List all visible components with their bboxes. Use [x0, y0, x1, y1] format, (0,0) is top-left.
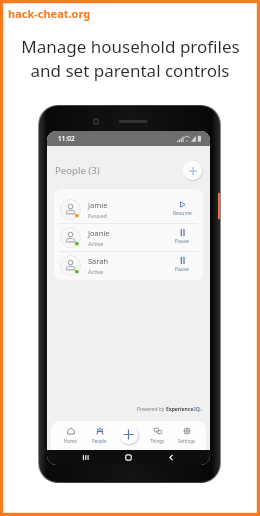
staticText: and set parental controls — [30, 59, 230, 82]
staticText: Settings — [178, 438, 196, 444]
staticText: Powered by — [137, 406, 166, 413]
staticText: Pause — [175, 266, 190, 273]
staticText: Pause — [175, 238, 190, 245]
staticText: Sarah — [88, 256, 109, 266]
button[interactable]: Joanie — [54, 223, 203, 251]
staticText: IQ — [194, 406, 200, 413]
button[interactable]: Pause — [168, 229, 197, 245]
staticText: Experience — [166, 406, 194, 413]
staticText: Home — [64, 438, 77, 444]
button[interactable]: Resume — [168, 201, 197, 217]
staticText: hack-cheat.org — [8, 6, 91, 21]
staticText: People — [92, 438, 107, 444]
button[interactable]: Add — [118, 424, 139, 445]
staticText: Resume — [173, 210, 192, 217]
button[interactable]: Add person — [182, 160, 203, 181]
staticText: Paused — [88, 212, 107, 219]
button[interactable]: Things — [143, 421, 172, 450]
staticText: Active — [88, 268, 104, 275]
button[interactable]: Settings — [172, 421, 201, 450]
button[interactable]: Home — [56, 421, 85, 450]
staticText: Jamie — [88, 200, 108, 210]
button[interactable]: Sarah — [54, 251, 203, 279]
staticText: ™ — [200, 408, 203, 413]
button[interactable]: Jamie — [54, 195, 203, 223]
staticText: People (3) — [55, 164, 100, 177]
button[interactable]: Pause — [168, 257, 197, 273]
staticText: Joanie — [88, 228, 110, 238]
staticText: Things — [150, 438, 165, 444]
staticText: Manage household profiles — [21, 35, 240, 58]
staticText: 11:02 — [58, 134, 75, 143]
button[interactable]: People — [85, 421, 114, 450]
staticText: Active — [88, 240, 104, 247]
